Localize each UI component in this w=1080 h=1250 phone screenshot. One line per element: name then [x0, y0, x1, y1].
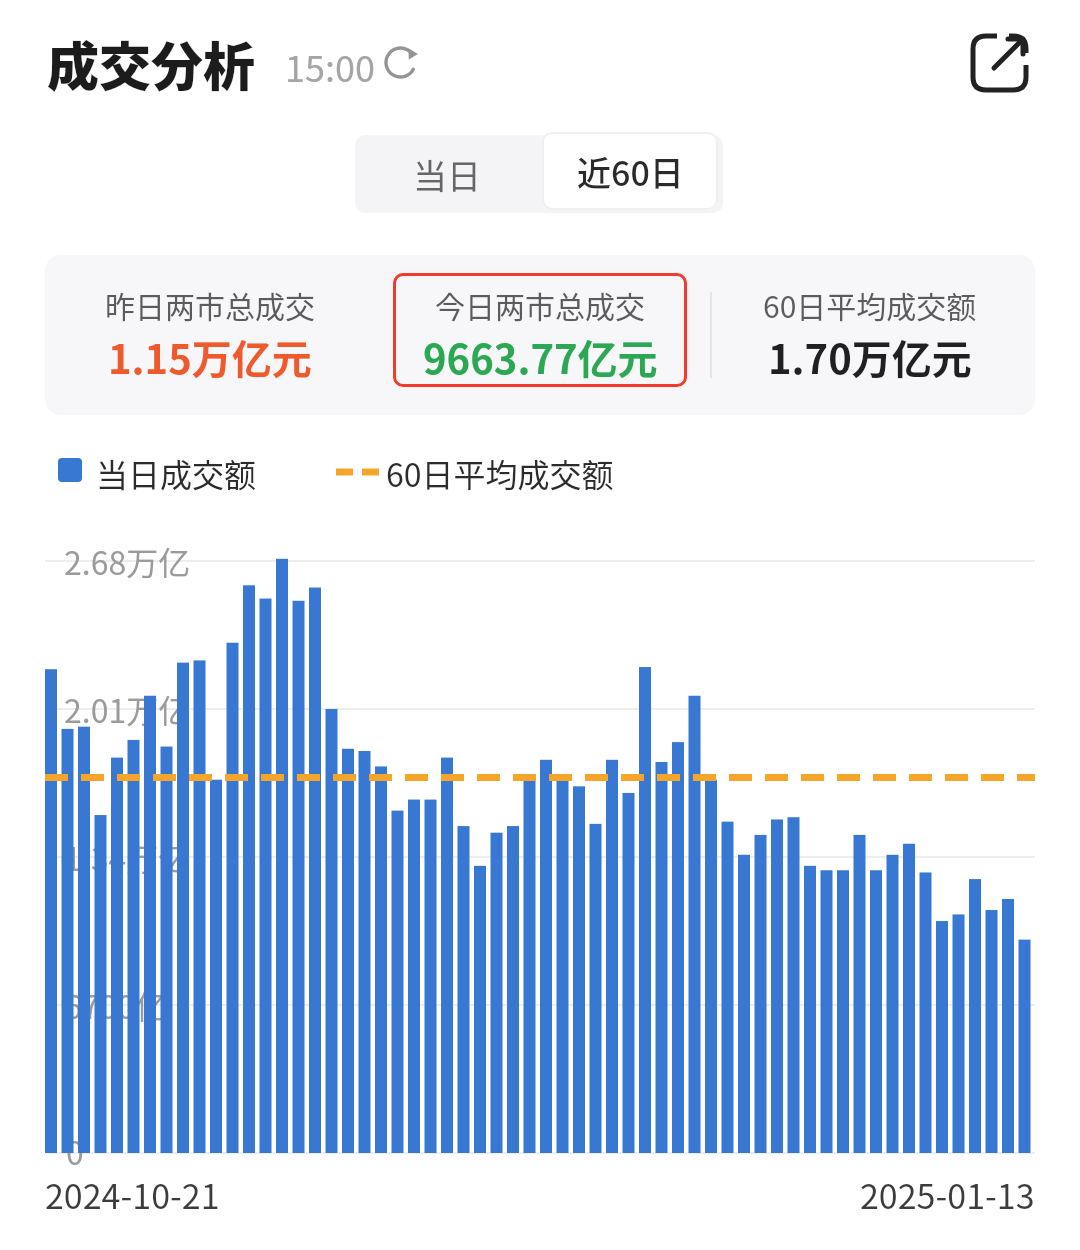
staticText: 0: [66, 1128, 84, 1174]
staticText: 9663.77亿元: [423, 328, 658, 386]
staticText: 成交分析: [47, 26, 256, 101]
staticText: 昨日两市总成交: [105, 283, 315, 326]
staticText: 2.01万亿: [64, 686, 191, 732]
staticText: 1.70万亿元: [768, 328, 972, 386]
button[interactable]: 当日: [355, 135, 539, 213]
staticText: 60日平均成交额: [386, 450, 614, 496]
staticText: 1.15万亿元: [108, 328, 312, 386]
staticText: 2.68万亿: [64, 538, 191, 584]
staticText: 2024-10-21: [45, 1170, 220, 1219]
staticText: 近60日: [577, 147, 684, 196]
staticText: 15:00: [285, 40, 375, 92]
staticText: 2025-01-13: [860, 1170, 1035, 1219]
staticText: 当日成交额: [96, 450, 257, 496]
staticText: 60日平均成交额: [763, 283, 977, 326]
staticText: 6700亿: [64, 982, 168, 1028]
staticText: 当日: [413, 150, 481, 199]
staticText: 今日两市总成交: [435, 283, 645, 326]
button[interactable]: [384, 46, 418, 80]
button[interactable]: 近60日: [542, 132, 718, 210]
staticText: 1.34万亿: [64, 834, 191, 880]
button[interactable]: [962, 27, 1034, 99]
button[interactable]: [393, 273, 687, 387]
